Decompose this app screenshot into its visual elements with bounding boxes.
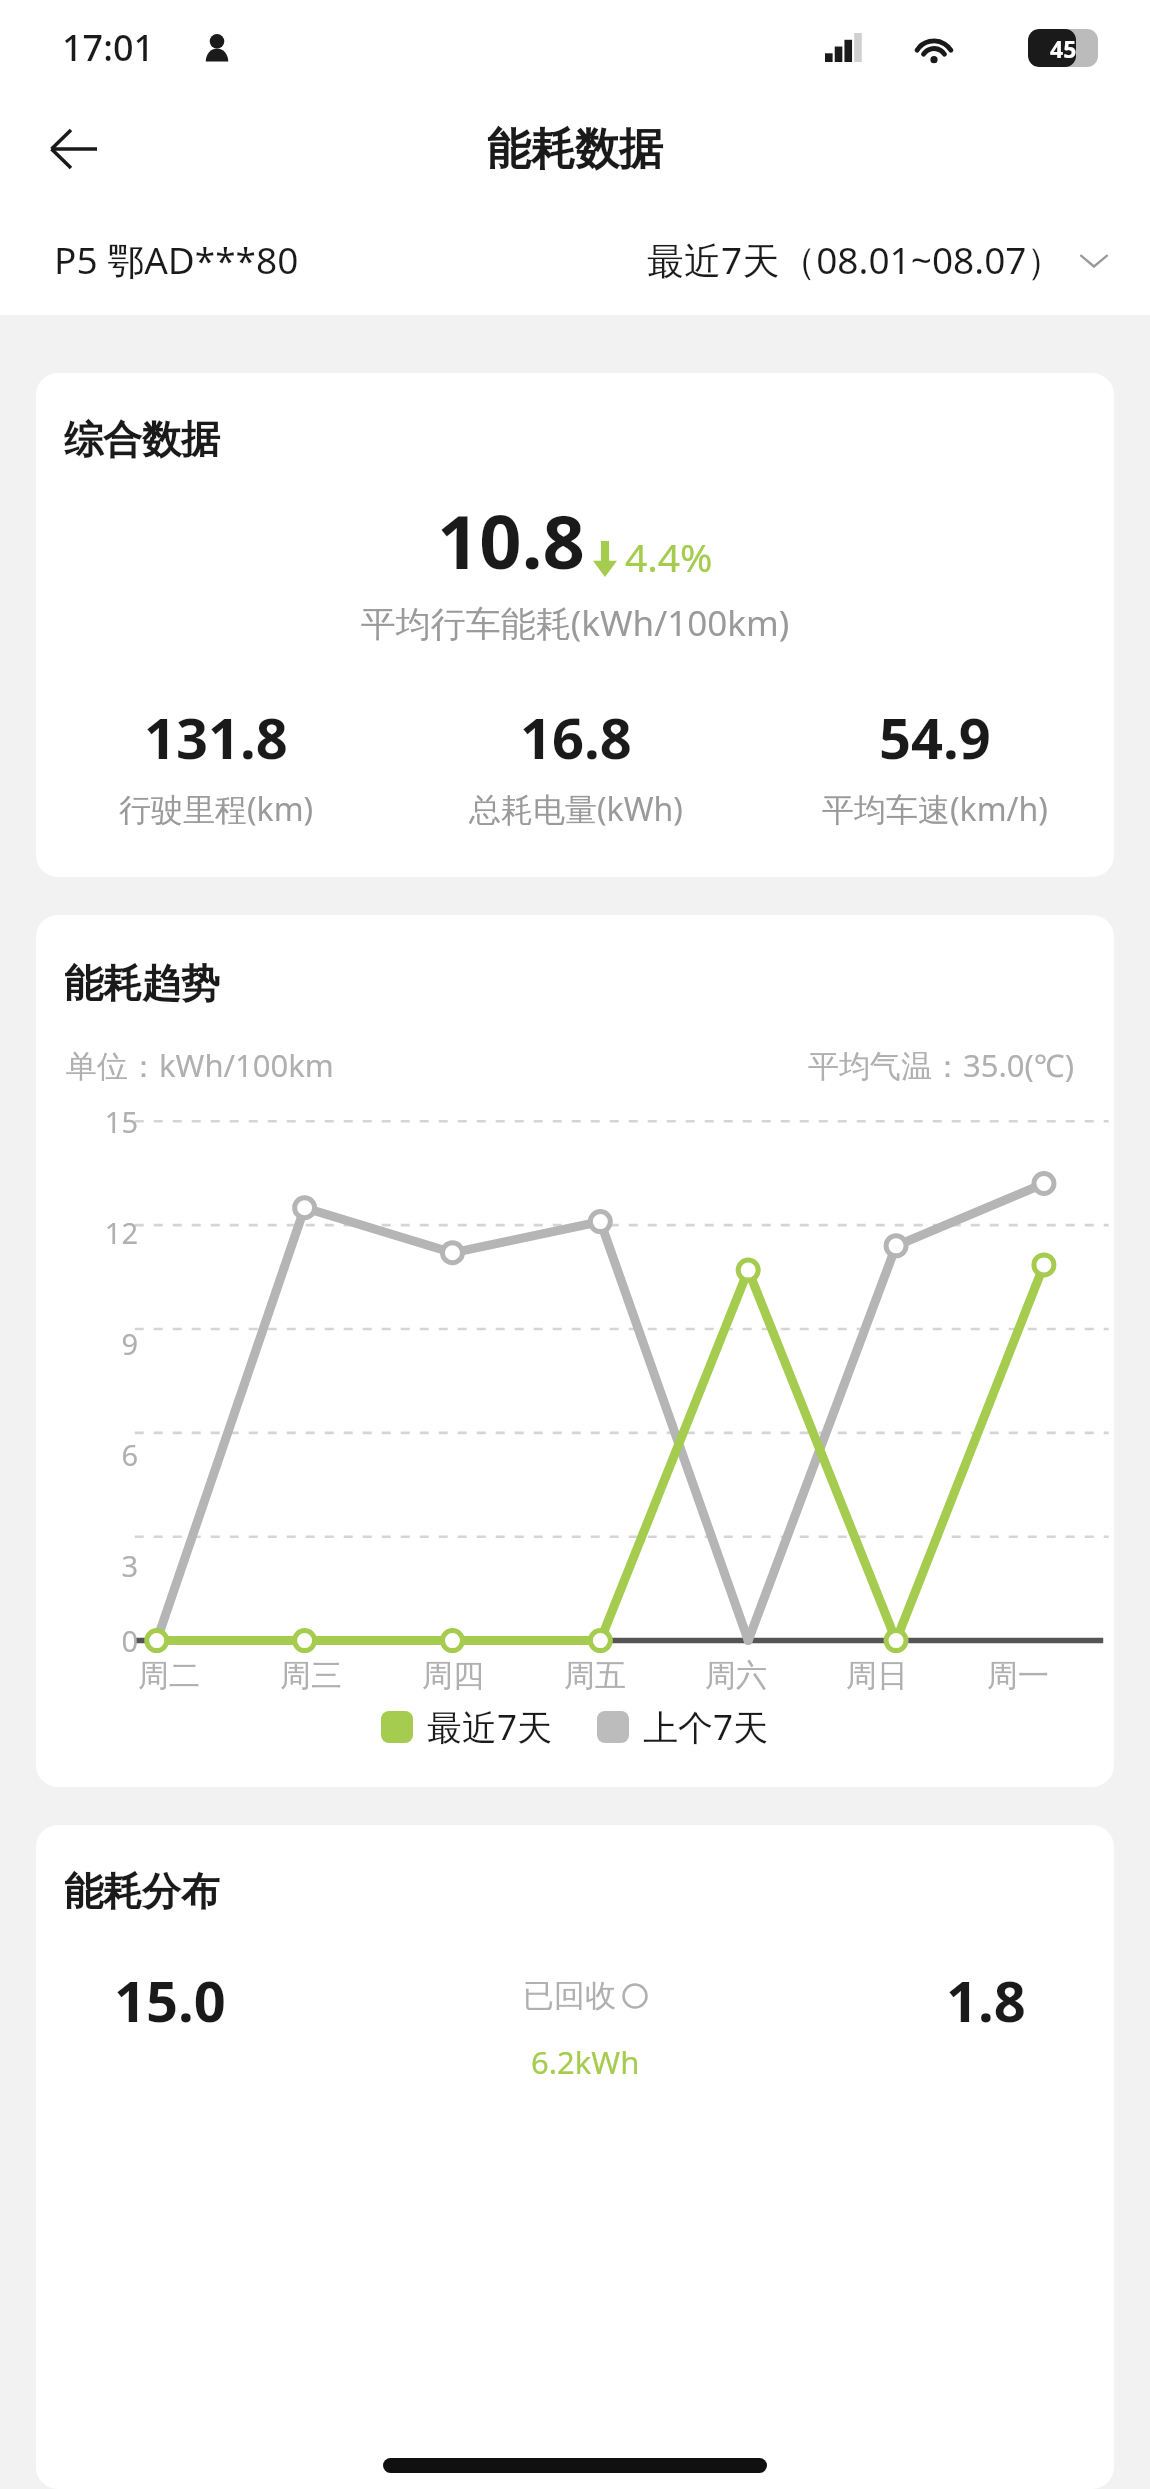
staticText: 12	[104, 1213, 138, 1252]
staticText: 16.8	[520, 699, 632, 775]
staticText: 能耗分布	[64, 1867, 220, 1916]
staticText: 131.8	[144, 699, 288, 775]
staticText: 周三	[280, 1656, 342, 1695]
staticText: 平均行车能耗(kWh/100km)	[36, 599, 1114, 647]
staticText: 15	[104, 1102, 138, 1141]
staticText: 周五	[564, 1656, 626, 1695]
staticText: 平均车速(km/h)	[822, 787, 1048, 831]
staticText: 1.8	[946, 1962, 1026, 2038]
button[interactable]: 上个7天	[597, 1703, 769, 1751]
staticText: 9	[121, 1324, 138, 1363]
staticText: 45	[1050, 33, 1077, 64]
staticText: 0	[121, 1621, 138, 1660]
button[interactable]: P5 鄂AD***80	[54, 234, 299, 285]
staticText: 平均气温：35.0(℃)	[808, 1044, 1074, 1086]
staticText: 54.9	[879, 699, 991, 775]
staticText: 6	[121, 1435, 138, 1474]
staticText: 4.4%	[625, 530, 713, 583]
staticText: 6.2kWh	[531, 2041, 640, 2083]
staticText: 周四	[422, 1656, 484, 1695]
staticText: 周二	[138, 1656, 200, 1695]
staticText: 能耗数据	[487, 122, 663, 177]
staticText: 15.0	[114, 1962, 226, 2038]
staticText: 能耗趋势	[64, 959, 220, 1008]
staticText: 已回收	[523, 1976, 616, 2015]
button[interactable]: Back	[26, 101, 122, 197]
staticText: 3	[121, 1546, 138, 1585]
staticText: 周一	[987, 1656, 1049, 1695]
staticText: 周六	[705, 1656, 767, 1695]
staticText: 10.8	[437, 490, 585, 591]
staticText: 最近7天	[427, 1703, 553, 1751]
staticText: 上个7天	[643, 1703, 769, 1751]
staticText: 最近7天（08.01~08.07）	[647, 234, 1064, 285]
staticText: 单位：kWh/100km	[66, 1044, 334, 1086]
staticText: 周日	[846, 1656, 908, 1695]
button[interactable]: 最近7天	[381, 1703, 553, 1751]
staticText: 总耗电量(kWh)	[469, 787, 683, 831]
staticText: 综合数据	[64, 415, 220, 464]
button[interactable]: 最近7天（08.01~08.07）	[647, 234, 1112, 285]
staticText: 17:01	[62, 23, 155, 72]
staticText: 行驶里程(km)	[119, 787, 314, 831]
